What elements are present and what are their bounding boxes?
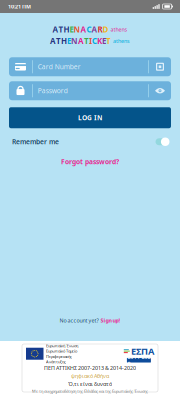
staticText: Card Number xyxy=(38,62,81,71)
button[interactable]: Remember me xyxy=(155,137,169,146)
staticText: Ανάπτυξης xyxy=(46,359,66,364)
staticText: T xyxy=(84,36,89,46)
button[interactable]: LOG IN xyxy=(9,107,171,128)
staticText: E xyxy=(102,36,106,46)
staticText: T xyxy=(106,36,111,46)
staticText: ψηφιακό Αθήνα xyxy=(71,372,109,379)
staticText: ΠΕΠ ΑΤΤΙΚΗΣ 2007-2013 & 2014-2020 xyxy=(44,364,136,371)
staticText: Ευρωπαϊκή Ένωση xyxy=(46,343,78,348)
staticText: A xyxy=(50,36,56,46)
button[interactable]: Scan card xyxy=(149,57,171,76)
staticText: A xyxy=(52,24,58,35)
staticText: Forgot password? xyxy=(61,157,119,166)
staticText: H xyxy=(61,36,67,46)
staticText: Password xyxy=(38,86,68,95)
staticText: 10:21 ΠΜ xyxy=(8,3,31,10)
staticText: R xyxy=(97,24,102,35)
staticText: Ό,τι είναι δυνατό xyxy=(68,380,112,388)
staticText: LOG IN xyxy=(78,113,102,122)
staticText: N xyxy=(71,36,78,46)
staticText: D xyxy=(102,24,108,35)
staticText: A xyxy=(78,36,84,46)
staticText: Με τη συγχρηματοδότηση της Ελλάδας και τ… xyxy=(32,389,148,394)
staticText: A xyxy=(80,24,86,35)
staticText: Sign up! xyxy=(100,317,120,324)
staticText: E xyxy=(69,24,73,35)
staticText: K xyxy=(97,36,102,46)
staticText: Περιφερειακής xyxy=(46,354,72,359)
staticText: C xyxy=(86,24,91,35)
staticText: E xyxy=(67,36,71,46)
staticText: athens xyxy=(110,26,127,33)
staticText: Remember me xyxy=(12,137,59,146)
staticText: A xyxy=(91,24,97,35)
staticText: T xyxy=(58,24,63,35)
staticText: H xyxy=(63,24,69,35)
staticText: No account yet? xyxy=(59,317,98,324)
button[interactable]: Show password xyxy=(149,81,171,100)
staticText: athens xyxy=(113,37,130,44)
staticText: C xyxy=(92,36,97,46)
staticText: N xyxy=(73,24,80,35)
staticText: ΕΣΠΑ xyxy=(131,345,154,357)
staticText: T xyxy=(56,36,61,46)
button[interactable]: No account yet? xyxy=(56,314,123,327)
button[interactable]: Forgot password? xyxy=(58,154,122,169)
staticText: 2014-2020 xyxy=(127,353,150,367)
staticText: I xyxy=(89,36,92,46)
staticText: Ευρωπαϊκό Ταμείο xyxy=(46,348,77,354)
